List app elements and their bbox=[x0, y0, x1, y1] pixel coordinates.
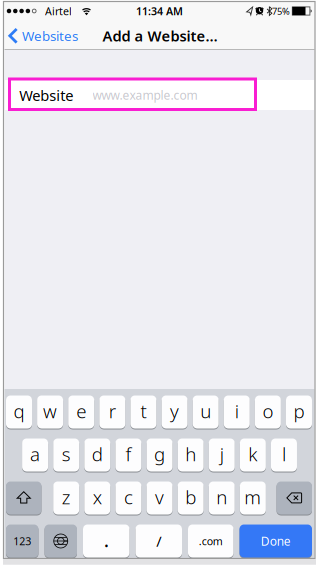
button[interactable]: g bbox=[146, 438, 172, 472]
staticText: r bbox=[109, 399, 116, 423]
button[interactable]: Done bbox=[239, 524, 312, 558]
button[interactable]: Next keyboard bbox=[44, 524, 77, 558]
staticText: j bbox=[220, 442, 224, 466]
button[interactable]: i bbox=[224, 395, 250, 429]
staticText: y bbox=[170, 399, 179, 423]
staticText: 11:34 AM bbox=[136, 4, 183, 18]
staticText: i bbox=[235, 399, 239, 423]
button[interactable]: n bbox=[209, 481, 235, 515]
button[interactable]: v bbox=[146, 481, 172, 515]
staticText: z bbox=[62, 485, 71, 509]
button[interactable]: u bbox=[193, 395, 219, 429]
staticText: 75% bbox=[272, 5, 290, 17]
button[interactable]: b bbox=[178, 481, 204, 515]
staticText: q bbox=[13, 399, 24, 423]
button[interactable]: o bbox=[255, 395, 281, 429]
staticText: s bbox=[62, 442, 71, 466]
staticText: c bbox=[124, 485, 133, 509]
button[interactable]: p bbox=[286, 395, 312, 429]
button[interactable]: s bbox=[53, 438, 79, 472]
button[interactable]: l bbox=[271, 438, 297, 472]
staticText: Airtel bbox=[45, 4, 72, 18]
button[interactable]: q bbox=[6, 395, 32, 429]
staticText: x bbox=[93, 485, 102, 509]
staticText: l bbox=[282, 442, 286, 466]
button[interactable]: Website bbox=[4, 80, 314, 110]
staticText: v bbox=[155, 485, 164, 509]
staticText: .com bbox=[199, 534, 223, 548]
button[interactable]: z bbox=[53, 481, 79, 515]
button[interactable]: y bbox=[162, 395, 188, 429]
staticText: 123 bbox=[13, 534, 31, 548]
button[interactable]: w bbox=[37, 395, 63, 429]
staticText: p bbox=[293, 399, 304, 423]
staticText: h bbox=[185, 442, 196, 466]
button[interactable]: t bbox=[130, 395, 156, 429]
staticText: a bbox=[30, 442, 40, 466]
button[interactable]: k bbox=[240, 438, 266, 472]
staticText: n bbox=[216, 485, 227, 509]
button[interactable]: f bbox=[115, 438, 141, 472]
button[interactable]: Websites bbox=[8, 22, 78, 49]
button[interactable]: d bbox=[84, 438, 110, 472]
button[interactable]: e bbox=[68, 395, 94, 429]
staticText: . bbox=[104, 526, 109, 553]
button[interactable]: r bbox=[99, 395, 125, 429]
staticText: d bbox=[92, 442, 103, 466]
staticText: t bbox=[140, 399, 146, 423]
button[interactable]: j bbox=[209, 438, 235, 472]
button[interactable]: h bbox=[178, 438, 204, 472]
button[interactable]: . bbox=[83, 524, 129, 558]
button[interactable]: Shift bbox=[6, 481, 41, 515]
staticText: m bbox=[244, 485, 261, 509]
button[interactable]: / bbox=[135, 524, 182, 558]
staticText: g bbox=[154, 442, 165, 466]
staticText: b bbox=[185, 485, 196, 509]
button[interactable]: 123 bbox=[6, 524, 38, 558]
staticText: / bbox=[156, 531, 161, 551]
button[interactable]: m bbox=[240, 481, 266, 515]
button[interactable]: c bbox=[115, 481, 141, 515]
staticText: u bbox=[200, 399, 211, 423]
staticText: o bbox=[262, 399, 273, 423]
button[interactable]: Delete bbox=[276, 481, 312, 515]
staticText: Done bbox=[261, 533, 291, 549]
staticText: f bbox=[125, 442, 131, 466]
button[interactable]: a bbox=[22, 438, 48, 472]
staticText: Website bbox=[19, 85, 73, 105]
staticText: Websites bbox=[22, 27, 78, 45]
staticText: e bbox=[76, 399, 86, 423]
staticText: Add a Website… bbox=[102, 26, 217, 46]
button[interactable]: x bbox=[84, 481, 110, 515]
button[interactable]: .com bbox=[188, 524, 233, 558]
staticText: w bbox=[43, 399, 57, 423]
staticText: www.example.com bbox=[92, 87, 197, 103]
staticText: k bbox=[248, 442, 257, 466]
